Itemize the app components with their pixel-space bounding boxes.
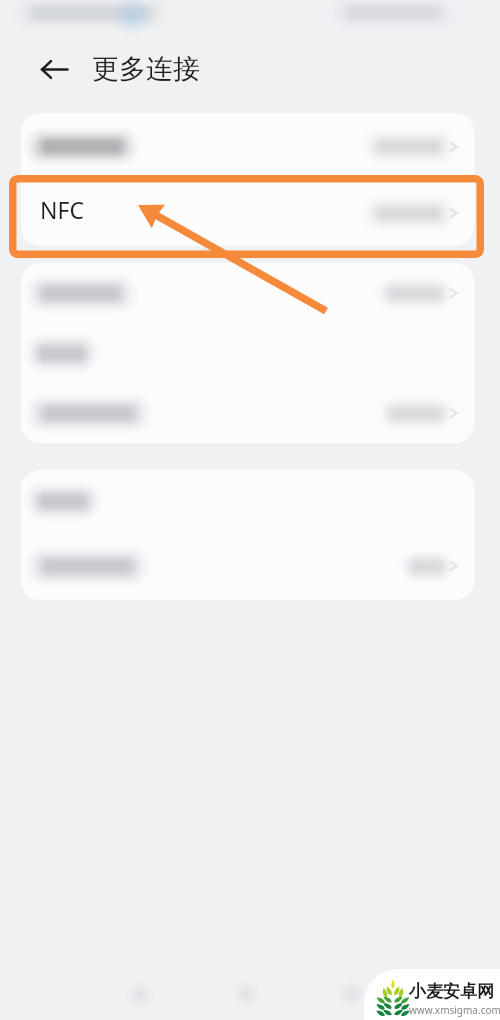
staticText: 小麦安卓网: [409, 981, 494, 1002]
staticText: NFC: [40, 194, 84, 225]
button[interactable]: [21, 323, 474, 383]
staticText: www.xmsigma.com: [409, 1003, 500, 1017]
button[interactable]: [21, 383, 474, 443]
button[interactable]: [21, 470, 474, 532]
button[interactable]: [21, 113, 474, 180]
button[interactable]: [21, 263, 474, 323]
button[interactable]: Back: [37, 52, 71, 86]
button[interactable]: NFC: [21, 180, 474, 246]
staticText: 更多连接: [92, 52, 200, 86]
button[interactable]: [21, 532, 474, 600]
